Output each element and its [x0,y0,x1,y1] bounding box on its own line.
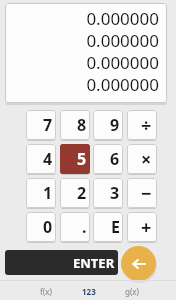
button[interactable]: × [127,144,157,174]
staticText: 0.000000 [86,51,159,73]
staticText: f(x) [40,286,52,297]
staticText: 2 [77,182,87,204]
staticText: + [141,215,152,240]
button[interactable]: . [60,212,90,242]
button[interactable]: ENTER [5,250,118,275]
staticText: 4 [43,148,53,170]
staticText: . [82,216,87,238]
button[interactable]: 5 [60,144,90,174]
button[interactable]: 1 [26,178,56,208]
button[interactable]: 6 [93,144,123,174]
button[interactable]: 0 [26,212,56,242]
button[interactable]: 3 [93,178,123,208]
button[interactable]: 8 [60,110,90,140]
staticText: E [111,216,120,238]
button[interactable]: 9 [93,110,123,140]
staticText: 0.000000 [86,29,159,51]
staticText: ÷ [141,113,152,138]
button[interactable]: 7 [26,110,56,140]
staticText: 0.000000 [86,73,159,95]
button[interactable]: 4 [26,144,56,174]
button[interactable]: g(x) [110,282,153,300]
button[interactable]: − [127,178,157,208]
staticText: 7 [43,114,53,136]
button[interactable]: 123 [67,282,110,300]
staticText: 5 [77,148,87,170]
staticText: ENTER [73,254,115,272]
staticText: 0.000000 [86,7,159,29]
staticText: g(x) [125,286,139,297]
button[interactable]: 2 [60,178,90,208]
button[interactable]: ÷ [127,110,157,140]
button[interactable]: + [127,212,157,242]
staticText: 8 [77,114,87,136]
button[interactable] [121,246,156,281]
staticText: 1 [43,182,53,204]
staticText: 123 [82,286,96,297]
staticText: 9 [110,114,120,136]
button[interactable]: E [93,212,123,242]
staticText: 0 [43,216,53,238]
staticText: × [141,147,152,172]
button[interactable]: f(x) [24,282,67,300]
staticText: − [141,181,152,206]
staticText: 3 [110,182,120,204]
staticText: 6 [110,148,120,170]
